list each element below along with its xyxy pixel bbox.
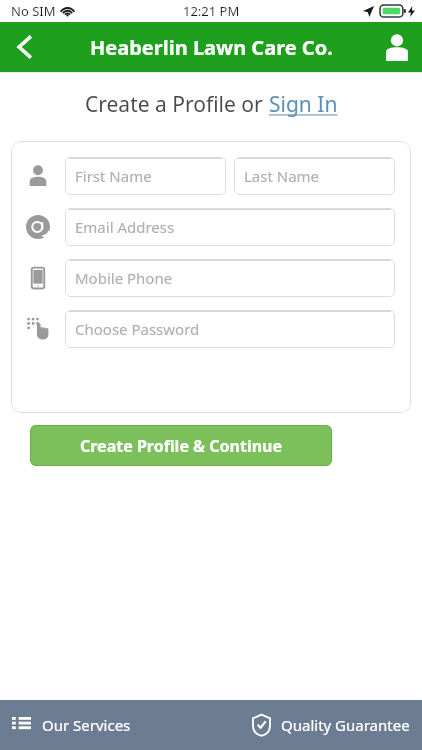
staticText: Mobile Phone	[75, 268, 173, 288]
button[interactable]: Choose Password	[65, 310, 395, 348]
button[interactable]: Account	[372, 22, 422, 72]
staticText: 12:21 PM	[183, 2, 240, 20]
staticText: Create Profile & Continue	[80, 435, 283, 457]
button[interactable]: Our Services	[0, 700, 211, 750]
button[interactable]: Quality Guarantee	[211, 700, 422, 750]
staticText: Last Name	[244, 166, 320, 186]
staticText: Create a Profile or	[85, 90, 269, 119]
button[interactable]: First Name	[65, 157, 226, 195]
staticText: Heaberlin Lawn Care Co.	[90, 34, 333, 61]
staticText: Our Services	[42, 715, 131, 735]
staticText: Choose Password	[75, 319, 200, 339]
staticText: Quality Guarantee	[281, 715, 410, 735]
staticText: First Name	[75, 166, 152, 186]
button[interactable]: Email Address	[65, 208, 395, 246]
staticText: Email Address	[75, 217, 175, 237]
staticText: Sign In	[269, 90, 338, 119]
button[interactable]: Last Name	[234, 157, 395, 195]
button[interactable]: Mobile Phone	[65, 259, 395, 297]
staticText: No SIM	[11, 2, 56, 20]
button[interactable]: Sign In	[269, 90, 338, 119]
button[interactable]: Create Profile & Continue	[30, 425, 332, 466]
button[interactable]: Back	[0, 22, 50, 72]
